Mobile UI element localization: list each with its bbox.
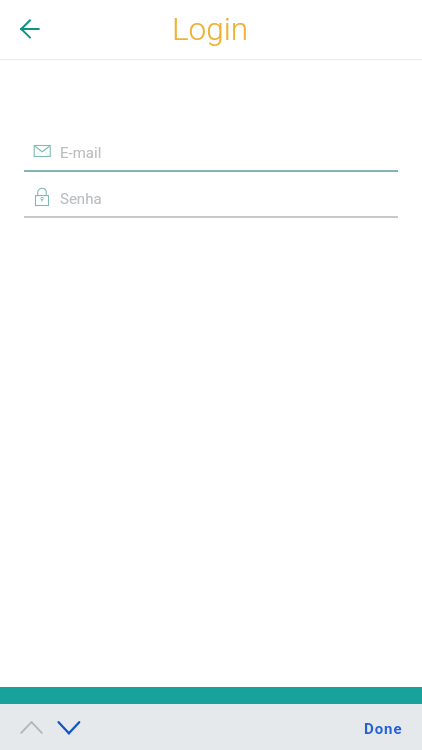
staticText: Login bbox=[172, 11, 249, 48]
staticText: Done bbox=[364, 720, 403, 738]
button[interactable]: E-mail bbox=[24, 138, 398, 171]
staticText: Senha bbox=[60, 190, 102, 208]
button[interactable]: Next field bbox=[51, 717, 87, 747]
button[interactable]: Previous field bbox=[13, 717, 49, 747]
staticText: E-mail bbox=[60, 144, 102, 162]
button[interactable]: Senha bbox=[24, 184, 398, 217]
button[interactable]: Done bbox=[350, 710, 422, 744]
button[interactable]: Back bbox=[8, 11, 44, 47]
